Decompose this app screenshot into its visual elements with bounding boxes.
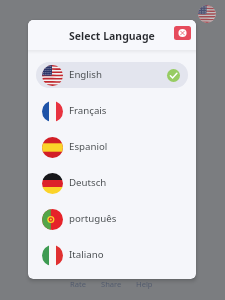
staticText: Deutsch [69,176,107,189]
button[interactable]: Deutsch [36,170,188,196]
staticText: Italiano [69,248,104,261]
button[interactable]: Français [36,98,188,124]
staticText: português [69,212,117,225]
button[interactable]: Rate [70,279,87,289]
staticText: Français [69,104,107,117]
staticText: Select Language [69,29,155,43]
button[interactable]: English [36,62,188,88]
staticText: English [69,68,102,81]
button[interactable]: português [36,206,188,232]
staticText: Espaniol [69,140,108,153]
button[interactable]: Espaniol [36,134,188,160]
button[interactable]: Current language [198,5,216,23]
button[interactable]: Help [136,279,153,289]
button[interactable]: Italiano [36,242,188,268]
button[interactable]: Share [101,279,122,289]
button[interactable]: Close [174,26,191,40]
